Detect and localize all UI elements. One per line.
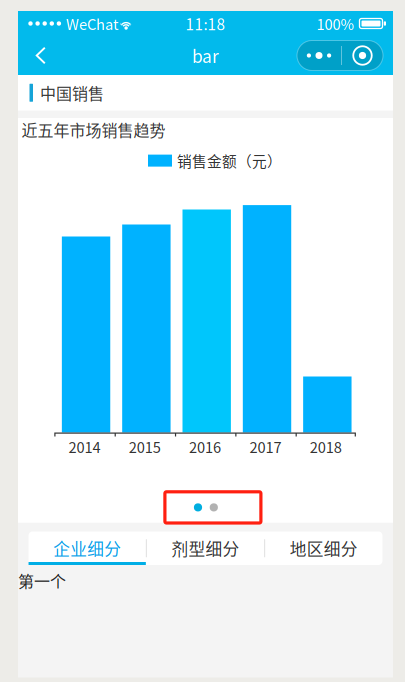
button[interactable]: 剂型细分 [147, 531, 264, 565]
button[interactable]: 地区细分 [265, 531, 382, 565]
staticText: bar [192, 43, 219, 68]
staticText: 2018 [310, 436, 342, 457]
staticText: 地区细分 [290, 536, 358, 560]
staticText: 销售金额（元） [177, 150, 282, 171]
staticText: 2015 [129, 436, 161, 457]
button[interactable]: Back [24, 36, 58, 75]
staticText: 企业细分 [53, 536, 121, 560]
button[interactable]: 企业细分 [29, 531, 146, 565]
staticText: 2017 [249, 436, 281, 457]
button[interactable]: More [297, 40, 341, 70]
staticText: 第一个 [18, 569, 66, 592]
staticText: 近五年市场销售趋势 [21, 118, 165, 141]
staticText: 100% [316, 13, 354, 34]
staticText: 11:18 [185, 12, 225, 35]
staticText: 中国销售 [40, 81, 104, 104]
staticText: 2016 [189, 436, 221, 457]
staticText: 剂型细分 [171, 536, 239, 560]
staticText: WeChat [66, 13, 119, 34]
staticText: 2014 [68, 436, 100, 457]
button[interactable]: Close mini program [342, 40, 383, 70]
